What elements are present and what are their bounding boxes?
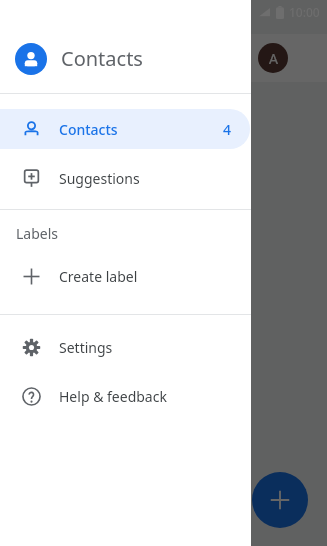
staticText: Settings [59, 338, 113, 357]
staticText: Help & feedback [59, 387, 167, 406]
button[interactable]: Create contact [252, 472, 308, 528]
staticText: 4 [223, 120, 232, 139]
staticText: Labels [16, 224, 59, 243]
button[interactable]: Create label [0, 256, 251, 296]
button[interactable]: Suggestions [0, 158, 251, 198]
staticText: A [269, 49, 278, 68]
staticText: Suggestions [59, 169, 140, 188]
button[interactable]: Contacts [0, 109, 250, 149]
staticText: Contacts [61, 45, 143, 72]
staticText: Create label [59, 267, 138, 286]
button[interactable]: Account [258, 43, 288, 73]
staticText: Contacts [59, 120, 118, 139]
button[interactable]: Help & feedback [0, 376, 251, 416]
button[interactable]: Settings [0, 327, 251, 367]
staticText: 10:00 [289, 4, 320, 20]
